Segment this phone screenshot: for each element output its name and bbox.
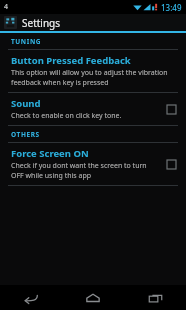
staticText: Check if you dont want the screen to tur…: [11, 161, 147, 171]
staticText: 4: [4, 2, 9, 12]
button[interactable]: Settings: [0, 14, 186, 31]
staticText: OTHERS: [11, 130, 40, 139]
staticText: 13:49: [161, 2, 182, 13]
button[interactable]: Toggle Force Screen ON: [162, 155, 180, 173]
button[interactable]: Toggle Sound: [162, 100, 180, 118]
button[interactable]: Button Pressed Feedback: [0, 50, 186, 92]
staticText: Check to enable on click key tone.: [11, 111, 122, 121]
staticText: feedback when key is pressed: [11, 78, 109, 88]
staticText: TUNING: [11, 37, 42, 46]
staticText: Button Pressed Feedback: [11, 54, 131, 67]
button[interactable]: Back: [0, 285, 62, 310]
staticText: Settings: [22, 16, 61, 30]
button[interactable]: Home: [62, 285, 124, 310]
button[interactable]: Sound: [0, 93, 186, 125]
staticText: Force Screen ON: [11, 147, 89, 160]
button[interactable]: Force Screen ON: [0, 143, 186, 185]
staticText: This option will allow you to adjust the…: [11, 68, 168, 78]
button[interactable]: Recent apps: [124, 285, 186, 310]
staticText: OFF while using this app: [11, 171, 92, 181]
staticText: Sound: [11, 97, 41, 110]
